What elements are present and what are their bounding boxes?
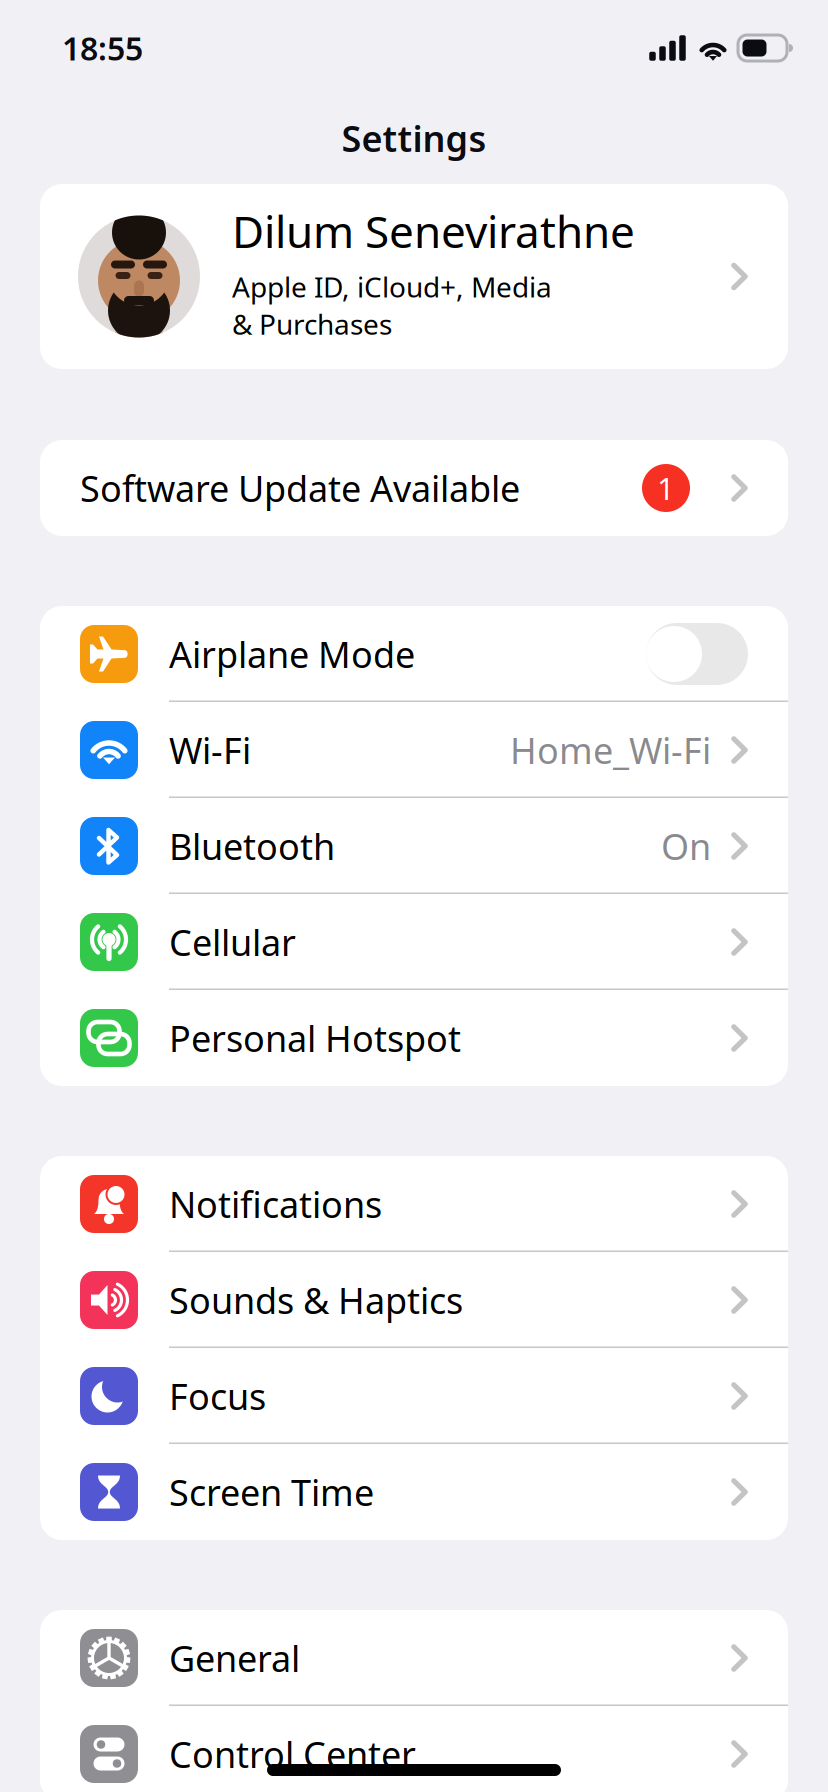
staticText: Sounds & Haptics <box>169 1276 463 1324</box>
button[interactable]: Sounds & Haptics <box>40 1252 788 1348</box>
staticText: Control Center <box>169 1730 416 1778</box>
staticText: Focus <box>169 1372 266 1420</box>
staticText: & Purchases <box>232 305 392 342</box>
staticText: Apple ID, iCloud+, Media <box>232 268 552 305</box>
button[interactable]: Wi-Fi <box>40 702 788 798</box>
button[interactable]: Software Update Available <box>40 440 788 536</box>
staticText: Software Update Available <box>80 464 520 512</box>
staticText: On <box>661 822 711 870</box>
staticText: Bluetooth <box>169 822 335 870</box>
staticText: Home_Wi-Fi <box>510 726 711 774</box>
staticText: Dilum Senevirathne <box>232 202 635 260</box>
staticText: Screen Time <box>169 1468 374 1516</box>
button[interactable]: Personal Hotspot <box>40 990 788 1086</box>
button[interactable]: Screen Time <box>40 1444 788 1540</box>
staticText: Personal Hotspot <box>169 1014 461 1062</box>
staticText: Settings <box>341 114 486 162</box>
button[interactable]: Cellular <box>40 894 788 990</box>
button[interactable]: Bluetooth <box>40 798 788 894</box>
button[interactable]: Focus <box>40 1348 788 1444</box>
button[interactable]: Dilum Senevirathne <box>40 184 788 369</box>
staticText: Cellular <box>169 918 296 966</box>
staticText: General <box>169 1634 300 1682</box>
staticText: Airplane Mode <box>169 630 415 678</box>
staticText: 18:55 <box>62 27 143 69</box>
button[interactable]: Airplane Mode <box>40 606 788 702</box>
staticText: Notifications <box>169 1180 382 1228</box>
staticText: 1 <box>657 468 675 508</box>
button[interactable]: Control Center <box>40 1706 788 1792</box>
staticText: Wi-Fi <box>169 726 251 774</box>
button[interactable]: Notifications <box>40 1156 788 1252</box>
button[interactable]: Airplane Mode toggle <box>646 623 748 685</box>
button[interactable]: General <box>40 1610 788 1706</box>
